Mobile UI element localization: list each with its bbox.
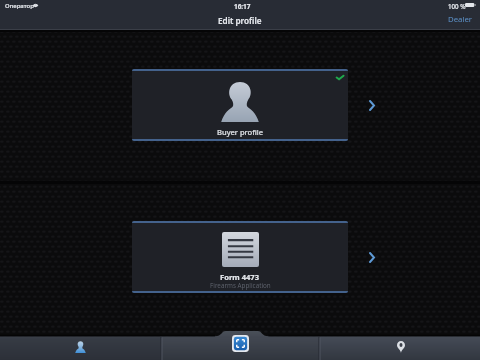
staticText: Firearms Application [210,281,271,290]
staticText: Dealer [448,14,473,25]
staticText: Оператор [5,2,34,10]
staticText: 100 % [448,2,466,10]
button[interactable]: Form 4473 [132,221,348,293]
button[interactable]: Location [319,335,480,360]
staticText: Form 4473 [220,272,260,282]
button[interactable]: Open [362,247,382,267]
staticText: 16:17 [234,2,251,11]
button[interactable]: Buyer profile [132,69,348,141]
button[interactable]: Dealer [441,11,477,28]
staticText: Buyer profile [217,127,263,137]
staticText: Edit profile [218,15,262,26]
button[interactable]: Open [362,95,382,115]
button[interactable]: Profile [0,335,161,360]
button[interactable]: Scan [161,331,319,360]
